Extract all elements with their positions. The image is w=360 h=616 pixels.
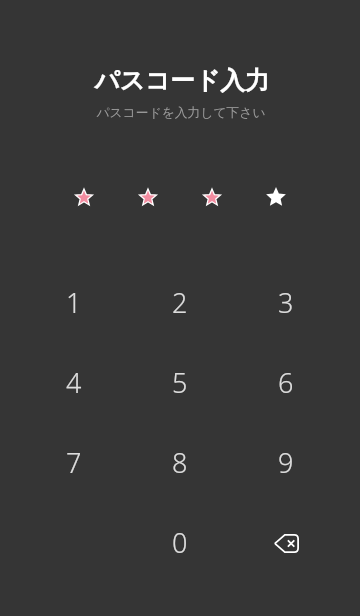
staticText: パスコード入力 (2, 65, 360, 96)
staticText: 1 (66, 284, 82, 321)
button[interactable]: 0 (127, 502, 233, 582)
staticText: 3 (278, 284, 294, 321)
button[interactable]: 8 (127, 422, 233, 502)
button[interactable]: 1 (21, 262, 127, 342)
staticText: 7 (66, 444, 82, 481)
staticText: 5 (172, 364, 188, 401)
button[interactable]: 9 (233, 422, 339, 502)
button[interactable]: 6 (233, 342, 339, 422)
button[interactable]: 3 (233, 262, 339, 342)
button[interactable]: 2 (127, 262, 233, 342)
staticText: 8 (172, 444, 188, 481)
staticText: 4 (66, 364, 82, 401)
button[interactable]: 7 (21, 422, 127, 502)
other: Passcode indicator (0, 185, 360, 209)
staticText: パスコードを入力して下さい (1, 105, 360, 121)
button[interactable]: 4 (21, 342, 127, 422)
staticText: 9 (278, 444, 294, 481)
staticText: 0 (172, 524, 188, 561)
staticText: 6 (278, 364, 294, 401)
button[interactable]: 5 (127, 342, 233, 422)
button[interactable]: Backspace (233, 502, 339, 582)
staticText: 2 (172, 284, 188, 321)
